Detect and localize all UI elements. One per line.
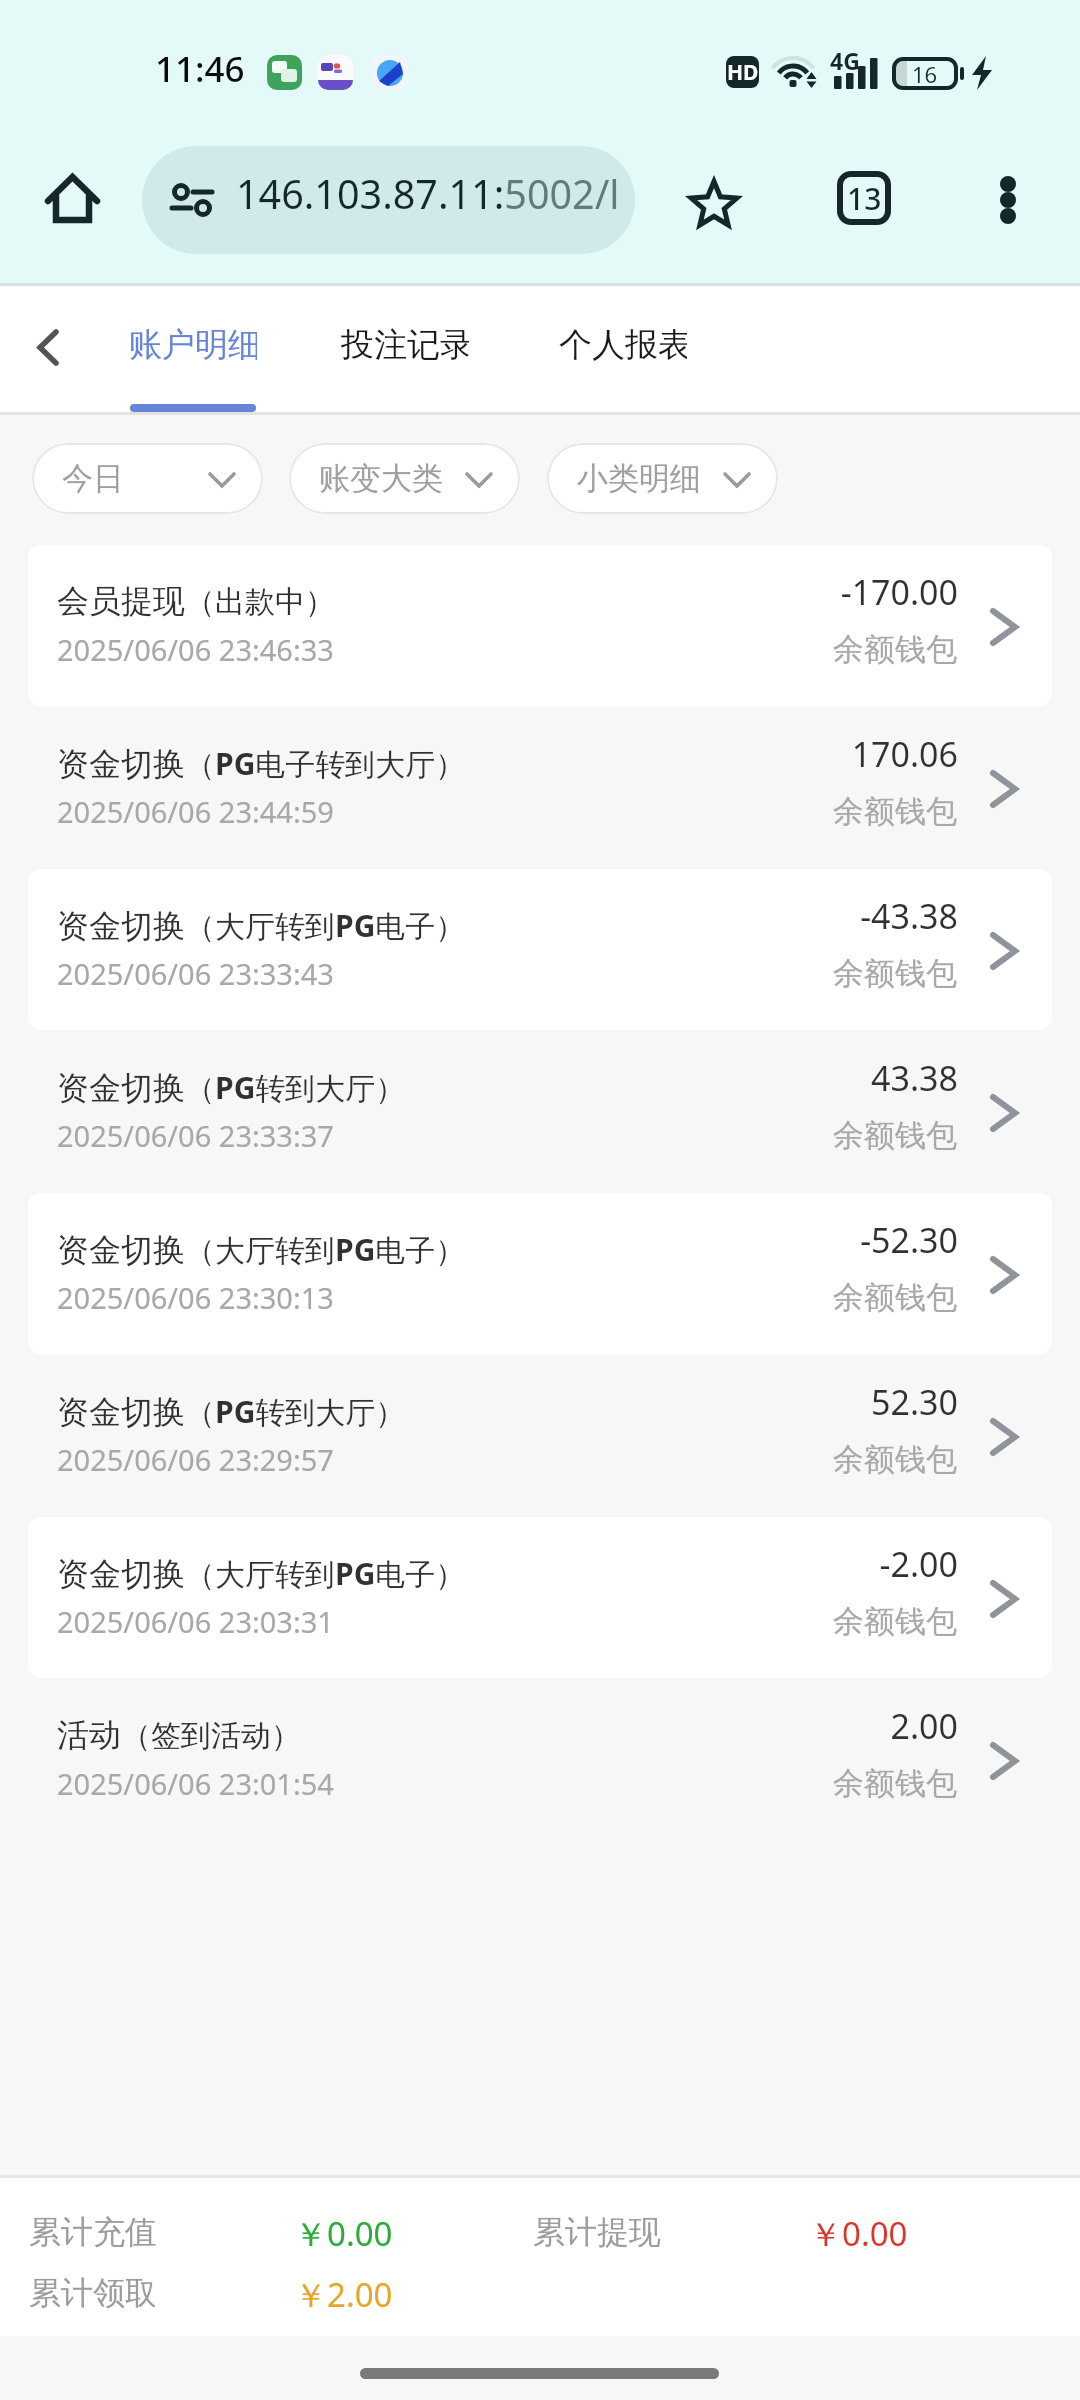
button[interactable]: Tabs [824, 158, 904, 238]
staticText: 2025/06/06 23:30:13 [57, 1278, 334, 1317]
staticText: 累计提现 [533, 2212, 661, 2252]
staticText: 今日 [62, 459, 124, 498]
button[interactable]: 个人报表 [559, 283, 687, 412]
staticText: 账户明细 [129, 324, 257, 366]
staticText: HD [727, 58, 759, 87]
staticText: 2025/06/06 23:46:33 [57, 630, 334, 669]
staticText: 2.00 [0, 1703, 958, 1749]
button[interactable]: 账户明细 [129, 283, 257, 412]
button[interactable]: 小类明细 [547, 443, 778, 514]
button[interactable]: More options [962, 154, 1054, 246]
staticText: 活动（签到活动） [57, 1715, 301, 1755]
button[interactable]: 资金切换（大厅转到PG电子） [0, 1517, 1080, 1679]
staticText: 资金切换（大厅转到PG电子） [57, 905, 466, 947]
staticText: 2025/06/06 23:33:43 [57, 954, 334, 993]
staticText: -52.30 [0, 1217, 958, 1263]
button[interactable]: 账变大类 [289, 443, 520, 514]
button[interactable]: 资金切换（大厅转到PG电子） [0, 1193, 1080, 1355]
staticText: 资金切换（PG转到大厅） [57, 1391, 406, 1433]
staticText: 余额钱包 [0, 1116, 957, 1155]
button[interactable]: 资金切换（PG电子转到大厅） [0, 707, 1080, 869]
staticText: 余额钱包 [0, 630, 957, 669]
staticText: 小类明细 [577, 459, 701, 498]
staticText: 2025/06/06 23:01:54 [57, 1764, 334, 1803]
staticText: 会员提现（出款中） [57, 581, 335, 621]
staticText: ￥0.00 [809, 2211, 908, 2256]
button[interactable]: Back [9, 307, 89, 387]
staticText: -43.38 [0, 893, 958, 939]
staticText: 资金切换（大厅转到PG电子） [57, 1229, 466, 1271]
staticText: 余额钱包 [0, 1602, 957, 1641]
staticText: 余额钱包 [0, 1440, 957, 1479]
staticText: 账变大类 [319, 459, 443, 498]
staticText: 余额钱包 [0, 792, 957, 831]
staticText: 146.103.87.11:5002/l [236, 167, 620, 221]
button[interactable]: 投注记录 [341, 283, 469, 412]
staticText: ￥0.00 [294, 2211, 393, 2256]
button[interactable]: 会员提现（出款中） [0, 545, 1080, 707]
staticText: -2.00 [0, 1541, 958, 1587]
staticText: 52.30 [0, 1379, 958, 1425]
staticText: -170.00 [0, 569, 958, 615]
staticText: 4G [830, 45, 860, 76]
staticText: 余额钱包 [0, 954, 957, 993]
staticText: 170.06 [0, 731, 958, 777]
button[interactable]: 资金切换（PG转到大厅） [0, 1031, 1080, 1193]
staticText: 个人报表 [559, 324, 687, 366]
button[interactable]: 资金切换（大厅转到PG电子） [0, 869, 1080, 1031]
staticText: 余额钱包 [0, 1278, 957, 1317]
button[interactable]: Home [32, 159, 112, 239]
button[interactable]: Bookmark [669, 160, 759, 250]
staticText: 投注记录 [341, 324, 469, 366]
staticText: 累计充值 [29, 2212, 157, 2252]
button[interactable]: 资金切换（PG转到大厅） [0, 1355, 1080, 1517]
staticText: 2025/06/06 23:44:59 [57, 792, 334, 831]
staticText: 累计领取 [29, 2273, 157, 2313]
staticText: 资金切换（PG电子转到大厅） [57, 743, 466, 785]
staticText: ￥2.00 [294, 2272, 393, 2317]
staticText: 2025/06/06 23:03:31 [57, 1602, 334, 1641]
staticText: 资金切换（PG转到大厅） [57, 1067, 406, 1109]
button[interactable]: 146.103.87.11:5002/l [142, 146, 635, 254]
staticText: 余额钱包 [0, 1764, 957, 1803]
button[interactable]: 活动（签到活动） [0, 1679, 1080, 1841]
staticText: 16 [912, 59, 938, 89]
staticText: 2025/06/06 23:29:57 [57, 1440, 334, 1479]
button[interactable]: 今日 [32, 443, 263, 514]
staticText: 2025/06/06 23:33:37 [57, 1116, 334, 1155]
staticText: 资金切换（大厅转到PG电子） [57, 1553, 466, 1595]
staticText: 13 [847, 178, 882, 219]
staticText: 11:46 [155, 45, 245, 93]
staticText: 43.38 [0, 1055, 958, 1101]
